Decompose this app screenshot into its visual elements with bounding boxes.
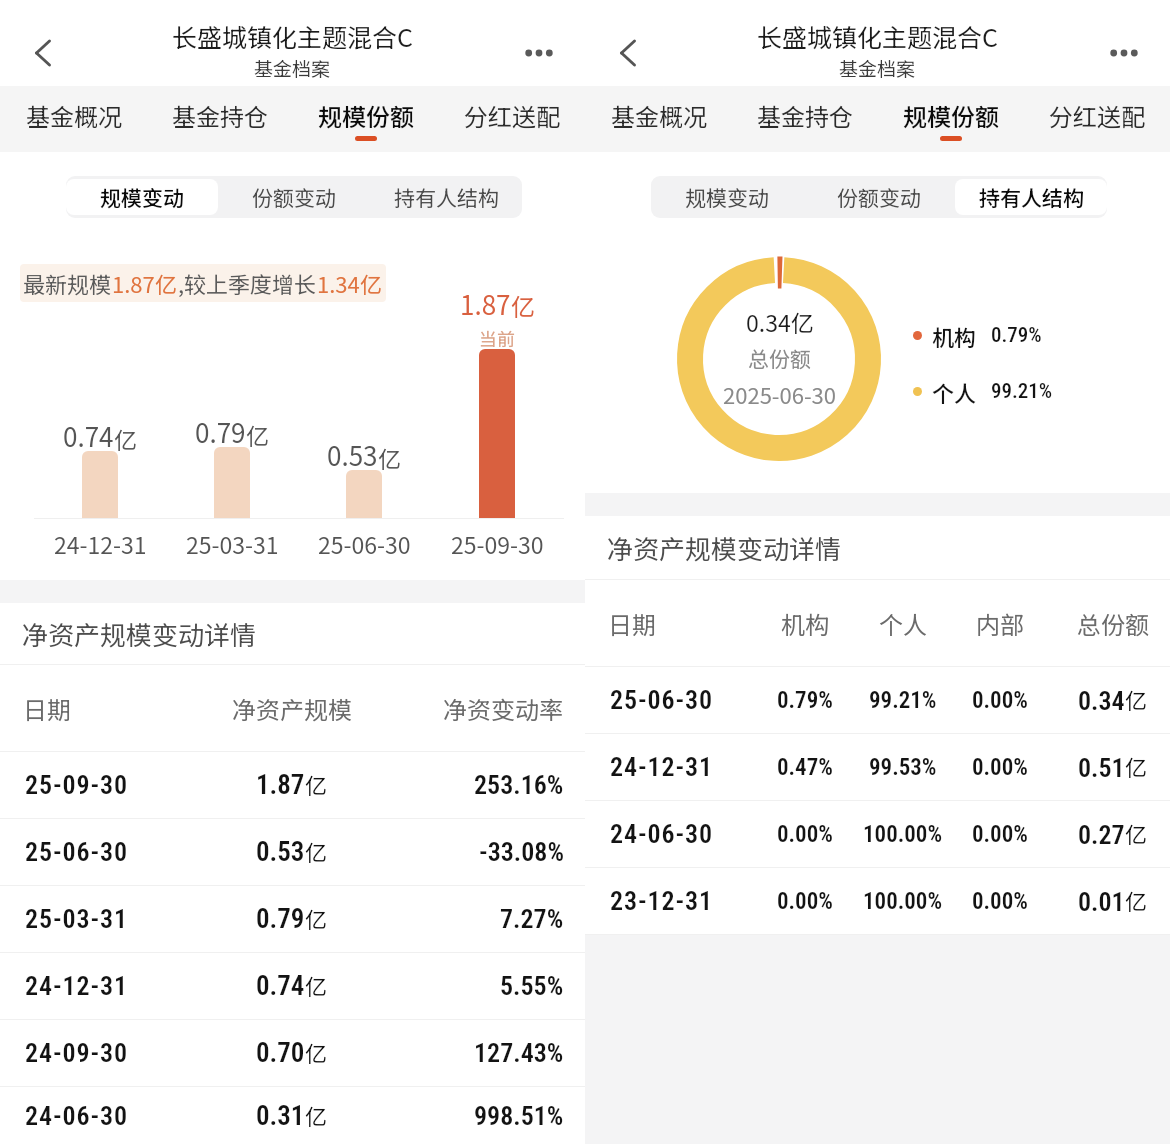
button[interactable]: 24-06-30	[0, 1087, 585, 1144]
staticText: 0.53	[256, 836, 305, 868]
button[interactable]: More options	[1092, 21, 1156, 85]
button[interactable]: 分红送配	[439, 86, 585, 152]
button[interactable]: 24-12-31	[585, 734, 1170, 800]
staticText: 0.70	[256, 1037, 305, 1069]
button[interactable]: 24-06-30	[585, 801, 1170, 867]
staticText: 净资产规模	[232, 691, 352, 726]
staticText: 0.00%	[972, 821, 1028, 848]
staticText: 亿	[114, 422, 137, 455]
staticText: 1.87	[460, 285, 511, 323]
staticText: 0.00%	[972, 888, 1028, 915]
button[interactable]: 基金持仓	[147, 86, 293, 152]
staticText: 个人	[879, 606, 927, 641]
staticText: 规模份额	[318, 98, 414, 133]
staticText: 亿	[305, 835, 328, 867]
staticText: 0.79%	[777, 687, 833, 714]
staticText: 0.74	[256, 970, 305, 1002]
staticText: 99.21%	[869, 687, 937, 714]
button[interactable]: 规模变动	[651, 179, 803, 215]
staticText: 0.00%	[972, 687, 1028, 714]
button[interactable]: 25-06-30	[585, 667, 1170, 733]
button[interactable]: 分红送配	[1024, 86, 1170, 152]
staticText: 基金概况	[611, 98, 707, 133]
button[interactable]: 25-03-31	[0, 886, 585, 952]
staticText: 净资产规模变动详情	[607, 529, 842, 567]
staticText: 个人	[932, 376, 977, 406]
button[interactable]: 份额变动	[218, 179, 370, 215]
button[interactable]: 个人	[913, 376, 1053, 406]
staticText: 日期	[608, 606, 656, 641]
button[interactable]: 24-12-31	[0, 953, 585, 1019]
staticText: 24-12-31	[25, 971, 129, 1001]
staticText: 亿	[1125, 817, 1148, 849]
staticText: 0.34亿	[746, 305, 814, 338]
staticText: 24-12-31	[610, 752, 714, 782]
button[interactable]: 规模份额	[293, 86, 439, 152]
staticText: 100.00%	[863, 888, 943, 915]
staticText: 最新规模	[23, 267, 112, 299]
staticText: 7.27%	[500, 904, 564, 934]
staticText: 1.34	[317, 267, 360, 299]
staticText: 0.31	[256, 1100, 305, 1132]
staticText: 日期	[23, 691, 71, 726]
staticText: 25-03-31	[25, 904, 129, 934]
staticText: 0.79	[256, 903, 305, 935]
staticText: 亿	[1125, 683, 1148, 715]
button[interactable]: 基金概况	[585, 86, 732, 152]
staticText: 2025-06-30	[723, 378, 836, 410]
staticText: 0.34	[1078, 686, 1125, 716]
staticText: 分红送配	[1049, 98, 1145, 133]
staticText: 253.16%	[474, 770, 564, 800]
staticText: 0.00%	[777, 821, 833, 848]
staticText: 持有人结构	[979, 182, 1084, 212]
staticText: 24-06-30	[25, 1101, 129, 1131]
staticText: 总份额	[748, 343, 811, 373]
staticText: 长盛城镇化主题混合C	[757, 18, 998, 54]
staticText: 总份额	[1077, 606, 1149, 641]
button[interactable]: 规模份额	[878, 86, 1024, 152]
button[interactable]: 持有人结构	[955, 179, 1107, 215]
staticText: 亿	[378, 441, 401, 474]
staticText: 亿	[1125, 750, 1148, 782]
staticText: 亿	[155, 267, 178, 299]
staticText: 100.00%	[863, 821, 943, 848]
button[interactable]: 25-06-30	[0, 819, 585, 885]
button[interactable]: 基金持仓	[732, 86, 878, 152]
staticText: 99.53%	[869, 754, 937, 781]
staticText: 亿	[1125, 884, 1148, 916]
staticText: 基金持仓	[172, 98, 268, 133]
staticText: 净资变动率	[443, 691, 563, 726]
staticText: 基金概况	[26, 98, 122, 133]
button[interactable]: 份额变动	[803, 179, 955, 215]
button[interactable]: 机构	[913, 320, 1042, 350]
staticText: 净资产规模变动详情	[22, 615, 257, 653]
button[interactable]: 规模变动	[66, 179, 218, 215]
staticText: 24-12-31	[54, 527, 147, 560]
button[interactable]: Back	[593, 18, 663, 88]
staticText: -33.08%	[479, 837, 564, 867]
button[interactable]: 24-09-30	[0, 1020, 585, 1086]
staticText: 0.00%	[972, 754, 1028, 781]
staticText: 0.27	[1078, 820, 1125, 850]
button[interactable]: 25-09-30	[0, 752, 585, 818]
button[interactable]: More options	[507, 21, 571, 85]
staticText: 0.53	[327, 436, 378, 474]
staticText: 长盛城镇化主题混合C	[172, 18, 413, 54]
staticText: 25-06-30	[610, 685, 714, 715]
staticText: 0.47%	[777, 754, 833, 781]
staticText: 亿	[360, 267, 383, 299]
staticText: 127.43%	[474, 1038, 564, 1068]
staticText: 0.51	[1078, 753, 1125, 783]
staticText: 25-06-30	[318, 527, 411, 560]
button[interactable]: 23-12-31	[585, 868, 1170, 934]
staticText: 机构	[781, 606, 829, 641]
button[interactable]: 持有人结构	[370, 179, 522, 215]
staticText: 机构	[932, 320, 977, 350]
staticText: 0.79	[195, 413, 246, 451]
staticText: 规模变动	[685, 182, 769, 212]
button[interactable]: Back	[8, 18, 78, 88]
staticText: 基金档案	[254, 54, 331, 82]
staticText: 998.51%	[474, 1101, 564, 1131]
staticText: 份额变动	[252, 182, 336, 212]
button[interactable]: 基金概况	[0, 86, 147, 152]
